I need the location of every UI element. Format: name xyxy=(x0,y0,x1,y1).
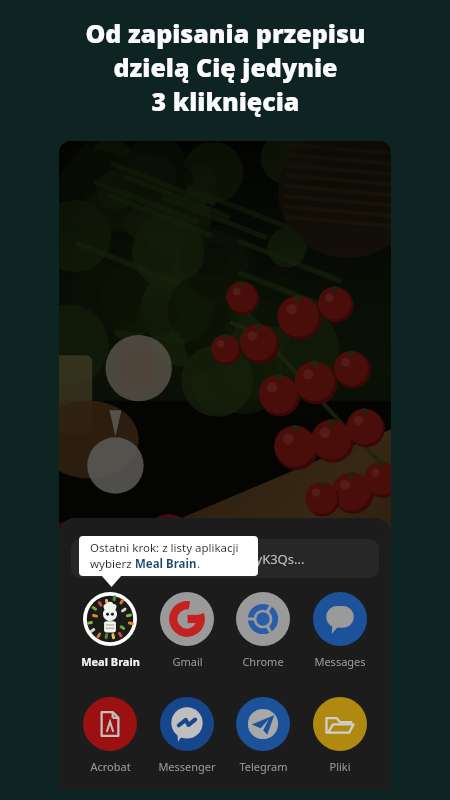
staticText: Meal Brain xyxy=(135,556,197,572)
button[interactable]: Meal Brain xyxy=(75,592,145,669)
button[interactable]: https://mealbrain.app/rZNDyK3Qs... xyxy=(71,539,379,578)
staticText: . xyxy=(197,556,201,572)
staticText: Telegram xyxy=(239,759,288,774)
staticText: Ostatni krok: z listy aplikacji xyxy=(90,540,239,556)
staticText: Messages xyxy=(314,654,366,669)
staticText: wybierz xyxy=(90,556,135,572)
button[interactable]: Ostatni krok: z listy aplikacji xyxy=(79,536,258,576)
staticText: Chrome xyxy=(242,654,284,669)
staticText: Messenger xyxy=(158,759,216,774)
staticText: Gmail xyxy=(172,654,203,669)
staticText: https://mealbrain.app/rZNDyK3Qs... xyxy=(85,550,305,568)
button[interactable]: Pliki xyxy=(305,697,375,774)
button[interactable]: Gmail xyxy=(152,592,222,669)
button[interactable]: Acrobat xyxy=(75,697,145,774)
staticText: Od zapisania przepisu dzielą Cię jedynie… xyxy=(85,16,366,118)
staticText: Pliki xyxy=(329,759,351,774)
button[interactable]: Messages xyxy=(305,592,375,669)
button[interactable]: Messenger xyxy=(152,697,222,774)
staticText: Meal Brain xyxy=(81,654,140,669)
staticText: Acrobat xyxy=(90,759,131,774)
button[interactable]: Chrome xyxy=(228,592,298,669)
button[interactable]: Telegram xyxy=(228,697,298,774)
